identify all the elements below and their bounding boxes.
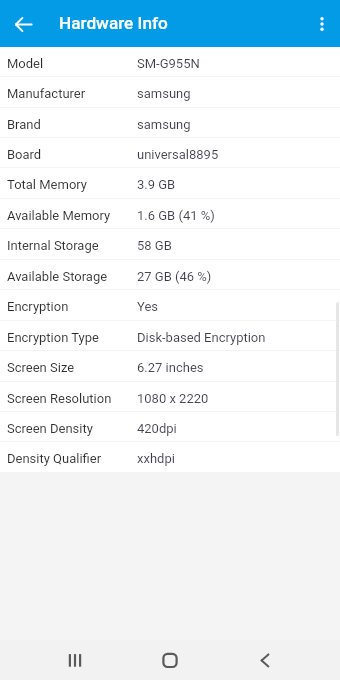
button[interactable]: More options xyxy=(305,7,339,41)
staticText: Screen Density xyxy=(7,421,93,436)
staticText: Manufacturer xyxy=(7,86,86,101)
staticText: Available Storage xyxy=(7,269,108,284)
staticText: Screen Size xyxy=(7,360,75,375)
button[interactable]: Available Memory xyxy=(0,199,340,229)
staticText: Yes xyxy=(137,299,158,314)
staticText: samsung xyxy=(137,117,191,132)
staticText: Board xyxy=(7,147,42,162)
staticText: Internal Storage xyxy=(7,238,99,253)
staticText: 420dpi xyxy=(137,421,177,436)
staticText: samsung xyxy=(137,86,191,101)
button[interactable]: Encryption Type xyxy=(0,321,340,351)
button[interactable]: Home xyxy=(150,640,190,680)
button[interactable]: Encryption xyxy=(0,290,340,320)
button[interactable]: Model xyxy=(0,47,340,77)
staticText: Encryption Type xyxy=(7,330,99,345)
staticText: Hardware Info xyxy=(59,13,168,33)
button[interactable]: Board xyxy=(0,138,340,168)
staticText: xxhdpi xyxy=(137,451,175,466)
staticText: 1080 x 2220 xyxy=(137,391,209,406)
button[interactable]: Back xyxy=(8,9,38,39)
button[interactable]: Brand xyxy=(0,108,340,138)
button[interactable]: Total Memory xyxy=(0,168,340,198)
staticText: Brand xyxy=(7,117,41,132)
staticText: Screen Resolution xyxy=(7,391,112,406)
staticText: Model xyxy=(7,56,44,71)
staticText: Density Qualifier xyxy=(7,451,102,466)
button[interactable]: Screen Density xyxy=(0,412,340,442)
staticText: Encryption xyxy=(7,299,69,314)
button[interactable]: Internal Storage xyxy=(0,229,340,259)
staticText: Disk-based Encryption xyxy=(137,330,266,345)
button[interactable]: Back xyxy=(245,640,285,680)
staticText: Available Memory xyxy=(7,208,111,223)
button[interactable]: Screen Resolution xyxy=(0,382,340,412)
staticText: 3.9 GB xyxy=(137,177,176,192)
staticText: universal8895 xyxy=(137,147,219,162)
staticText: 6.27 inches xyxy=(137,360,204,375)
button[interactable]: Recent apps xyxy=(55,640,95,680)
staticText: SM-G955N xyxy=(137,56,200,71)
staticText: 1.6 GB (41 %) xyxy=(137,208,215,223)
staticText: Total Memory xyxy=(7,177,87,192)
button[interactable]: Screen Size xyxy=(0,351,340,381)
button[interactable]: Density Qualifier xyxy=(0,442,340,472)
button[interactable]: Available Storage xyxy=(0,260,340,290)
button[interactable]: Manufacturer xyxy=(0,77,340,107)
staticText: 58 GB xyxy=(137,238,172,253)
staticText: 27 GB (46 %) xyxy=(137,269,212,284)
